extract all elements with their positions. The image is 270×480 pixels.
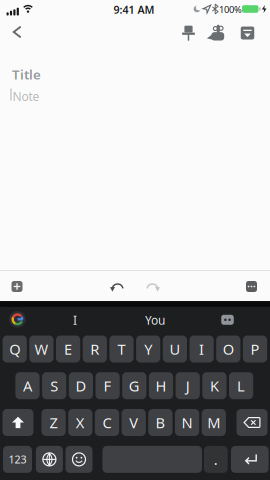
- button[interactable]: R: [83, 335, 107, 362]
- button[interactable]: C: [95, 409, 119, 436]
- button[interactable]: [36, 446, 63, 473]
- button[interactable]: [6, 20, 28, 44]
- staticText: G: [129, 376, 140, 395]
- button[interactable]: [65, 446, 92, 473]
- staticText: L: [237, 376, 245, 395]
- staticText: Note: [12, 88, 39, 104]
- button[interactable]: D: [69, 372, 93, 399]
- staticText: You: [145, 312, 165, 328]
- button[interactable]: W: [29, 335, 53, 362]
- button[interactable]: P: [243, 335, 267, 362]
- button[interactable]: O: [216, 335, 240, 362]
- button[interactable]: G: [122, 372, 146, 399]
- staticText: J: [186, 376, 190, 395]
- staticText: A: [23, 376, 32, 395]
- button[interactable]: E: [56, 335, 80, 362]
- button[interactable]: [231, 446, 269, 473]
- button[interactable]: J: [176, 372, 200, 399]
- staticText: O: [223, 339, 234, 359]
- staticText: 100%: [219, 3, 242, 16]
- button[interactable]: Z: [41, 409, 66, 436]
- staticText: 123: [8, 452, 26, 466]
- button[interactable]: [217, 311, 237, 329]
- staticText: C: [102, 413, 111, 432]
- button[interactable]: I: [40, 306, 110, 334]
- staticText: R: [90, 339, 99, 359]
- button[interactable]: [202, 21, 229, 45]
- staticText: X: [76, 413, 85, 432]
- button[interactable]: X: [68, 409, 92, 436]
- button[interactable]: B: [148, 409, 172, 436]
- button[interactable]: .: [204, 446, 228, 473]
- button[interactable]: Q: [3, 335, 27, 362]
- button[interactable]: M: [202, 409, 226, 436]
- button[interactable]: I: [189, 335, 214, 362]
- button[interactable]: K: [202, 372, 226, 399]
- staticText: V: [129, 413, 138, 432]
- button[interactable]: U: [163, 335, 187, 362]
- button[interactable]: [2, 409, 33, 436]
- staticText: N: [182, 413, 193, 432]
- button[interactable]: [242, 277, 261, 296]
- button[interactable]: You: [120, 306, 190, 334]
- button[interactable]: L: [229, 372, 253, 399]
- button[interactable]: T: [109, 335, 134, 362]
- button[interactable]: N: [175, 409, 199, 436]
- button[interactable]: [236, 409, 267, 436]
- staticText: F: [104, 376, 112, 395]
- staticText: P: [250, 339, 259, 359]
- button[interactable]: [7, 277, 26, 296]
- staticText: U: [169, 339, 180, 359]
- staticText: W: [34, 339, 48, 359]
- staticText: Z: [50, 413, 58, 432]
- button[interactable]: 123: [3, 446, 32, 473]
- staticText: Y: [144, 339, 152, 359]
- button[interactable]: V: [122, 409, 146, 436]
- button[interactable]: F: [95, 372, 120, 399]
- staticText: M: [207, 413, 220, 432]
- staticText: E: [64, 339, 72, 359]
- button[interactable]: [178, 22, 199, 44]
- staticText: S: [50, 376, 58, 395]
- staticText: I: [199, 339, 204, 359]
- button[interactable]: H: [149, 372, 173, 399]
- button[interactable]: [102, 446, 202, 473]
- button[interactable]: [106, 278, 128, 297]
- staticText: .: [214, 450, 218, 469]
- button[interactable]: A: [15, 372, 40, 399]
- staticText: 9:41 AM: [113, 2, 154, 17]
- staticText: B: [155, 413, 165, 432]
- staticText: Q: [9, 339, 20, 359]
- staticText: I: [73, 312, 77, 328]
- button[interactable]: Y: [136, 335, 160, 362]
- button[interactable]: [141, 278, 163, 297]
- button[interactable]: S: [42, 372, 66, 399]
- button[interactable]: [5, 307, 29, 331]
- staticText: D: [75, 376, 86, 395]
- staticText: T: [117, 339, 125, 359]
- button[interactable]: [237, 22, 258, 43]
- staticText: K: [210, 376, 219, 395]
- staticText: Title: [12, 65, 41, 83]
- staticText: H: [155, 376, 166, 395]
